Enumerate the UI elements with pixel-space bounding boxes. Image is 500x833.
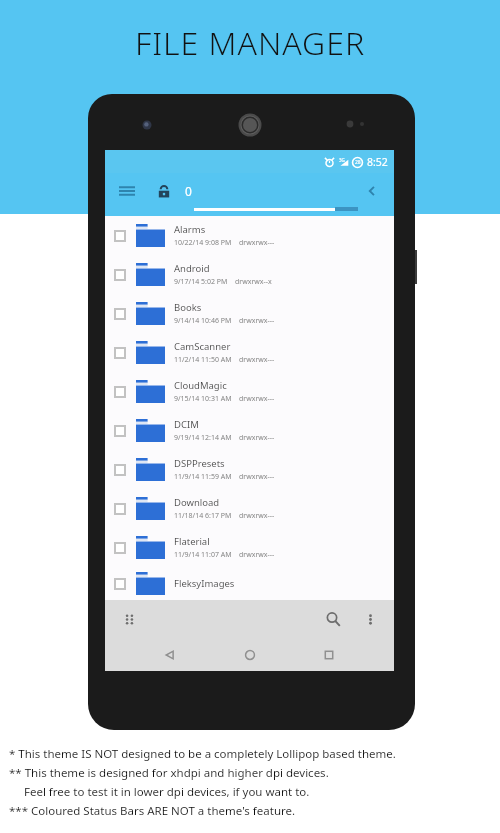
staticText: 28 <box>355 159 361 166</box>
button[interactable]: Select Alarms <box>114 230 126 242</box>
button[interactable]: Grid view <box>116 606 142 632</box>
staticText: 9/15/14 10:31 AM <box>174 394 232 404</box>
button[interactable]: Back <box>359 178 385 204</box>
staticText: Flaterial <box>174 535 210 548</box>
staticText: drwxrwx--- <box>239 316 275 326</box>
staticText: 11/18/14 6:17 PM <box>174 511 232 521</box>
button[interactable]: Select DCIM <box>105 411 394 450</box>
staticText: Android <box>174 262 210 275</box>
button[interactable]: Recents <box>314 640 344 670</box>
staticText: Books <box>174 301 202 314</box>
button[interactable]: Select DCIM <box>114 425 126 437</box>
staticText: FleksyImages <box>174 577 235 590</box>
staticText: DSPPresets <box>174 457 225 470</box>
staticText: 10/22/14 9:08 PM <box>174 238 232 248</box>
staticText: 8:52 <box>367 155 388 169</box>
button[interactable]: Lock <box>152 179 176 203</box>
staticText: drwxrwx--- <box>239 550 275 560</box>
staticText: drwxrwx--- <box>239 433 275 443</box>
staticText: drwxrwx--- <box>239 394 275 404</box>
staticText: 0 <box>185 183 192 199</box>
staticText: Alarms <box>174 223 206 236</box>
button[interactable]: Select Flaterial <box>114 542 126 554</box>
button[interactable]: Select CloudMagic <box>105 372 394 411</box>
staticText: 11/9/14 11:07 AM <box>174 550 232 560</box>
button[interactable]: Select FleksyImages <box>114 578 126 590</box>
button[interactable]: Select FleksyImages <box>105 567 394 600</box>
staticText: drwxrwx--x <box>235 277 272 287</box>
staticText: *** Coloured Status Bars ARE NOT a theme… <box>9 803 296 819</box>
staticText: 9/14/14 10:46 PM <box>174 316 232 326</box>
staticText: Feel free to test it in lower dpi device… <box>9 784 310 800</box>
button[interactable]: Select CamScanner <box>114 347 126 359</box>
staticText: 11/2/14 11:50 AM <box>174 355 232 365</box>
button[interactable]: Menu <box>114 178 140 204</box>
button[interactable]: Select Books <box>114 308 126 320</box>
button[interactable]: More options <box>357 606 383 632</box>
staticText: FILE MANAGER <box>135 21 366 65</box>
staticText: drwxrwx--- <box>239 355 275 365</box>
button[interactable]: Select DSPPresets <box>105 450 394 489</box>
button[interactable]: Select DSPPresets <box>114 464 126 476</box>
staticText: 3G <box>339 157 345 163</box>
button[interactable]: Select Android <box>114 269 126 281</box>
staticText: CamScanner <box>174 340 231 353</box>
staticText: 11/9/14 11:59 AM <box>174 472 232 482</box>
staticText: Download <box>174 496 220 509</box>
button[interactable]: Select Alarms <box>105 216 394 255</box>
staticText: drwxrwx--- <box>239 472 275 482</box>
button[interactable]: Select CamScanner <box>105 333 394 372</box>
button[interactable]: Select CloudMagic <box>114 386 126 398</box>
button[interactable]: Back <box>155 640 185 670</box>
staticText: drwxrwx--- <box>239 511 275 521</box>
button[interactable]: Select Books <box>105 294 394 333</box>
staticText: DCIM <box>174 418 199 431</box>
button[interactable]: Home <box>235 640 265 670</box>
staticText: drwxrwx--- <box>239 238 275 248</box>
staticText: 9/17/14 5:02 PM <box>174 277 228 287</box>
button[interactable]: Select Android <box>105 255 394 294</box>
button[interactable]: Search <box>319 605 347 633</box>
staticText: * This theme IS NOT designed to be a com… <box>9 746 396 762</box>
staticText: ** This theme is designed for xhdpi and … <box>9 765 329 781</box>
staticText: CloudMagic <box>174 379 227 392</box>
button[interactable]: Select Flaterial <box>105 528 394 567</box>
button[interactable]: Select Download <box>114 503 126 515</box>
button[interactable]: Select Download <box>105 489 394 528</box>
staticText: 9/19/14 12:14 AM <box>174 433 232 443</box>
